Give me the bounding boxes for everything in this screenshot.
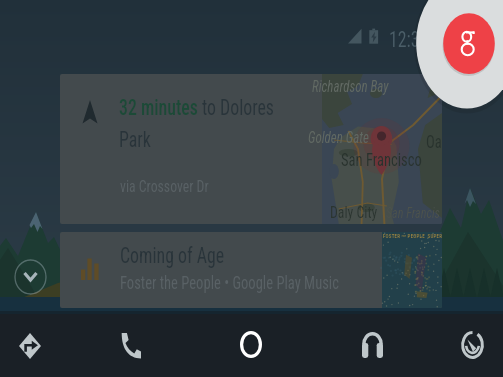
button[interactable]: Home: [222, 319, 280, 370]
staticText: 32 minutes to Dolores Park: [119, 95, 305, 152]
button[interactable]: Phone: [102, 320, 159, 371]
staticText: FOSTER ᴴᴱ PEOPLE SUPERMODEL: [383, 233, 442, 240]
staticText: via Crossover Dr: [120, 176, 209, 196]
staticText: Richardson Bay: [312, 77, 389, 96]
staticText: 12:32: [389, 27, 429, 53]
staticText: Coming of Age: [120, 243, 224, 269]
staticText: Oa: [426, 131, 442, 152]
button[interactable]: Show more: [14, 259, 47, 295]
button[interactable]: Media: [344, 320, 401, 370]
button[interactable]: Richardson Bay: [60, 74, 442, 224]
staticText: Daly City: [330, 202, 378, 222]
button[interactable]: Car status: [443, 319, 502, 371]
staticText: San Francisco: [341, 149, 422, 170]
button[interactable]: Navigation: [1, 321, 59, 371]
staticText: Golden Gate: [308, 128, 370, 147]
staticText: Foster the People • Google Play Music: [120, 272, 339, 293]
staticText: San Francis: [386, 204, 440, 222]
button[interactable]: FOSTER ᴴᴱ PEOPLE SUPERMODEL: [60, 232, 442, 308]
